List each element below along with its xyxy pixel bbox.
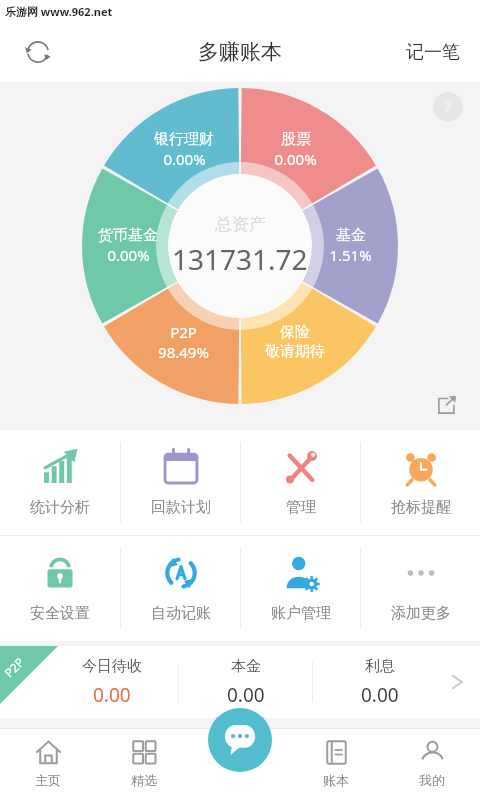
button[interactable]: 管理 [241, 430, 360, 535]
staticText: 0.00% [163, 149, 206, 169]
staticText: 利息 [365, 657, 395, 676]
staticText: 98.49% [158, 342, 209, 362]
staticText: ? [444, 96, 452, 118]
staticText: P2P [170, 322, 197, 342]
staticText: 0.00 [361, 682, 399, 708]
staticText: 今日待收 [82, 657, 142, 676]
staticText: 131731.72 [172, 240, 308, 278]
staticText: 安全设置 [30, 604, 90, 623]
staticText: 股票 [281, 130, 311, 149]
button[interactable]: 自动记账 [121, 536, 240, 641]
button[interactable]: 记一笔 [400, 33, 466, 72]
staticText: P2P [1, 654, 27, 680]
staticText: 敬请期待 [265, 342, 325, 361]
staticText: 保险 [280, 323, 310, 342]
staticText: 0.00 [93, 682, 131, 708]
button[interactable]: Chat [208, 708, 272, 772]
button[interactable]: Share [430, 388, 464, 422]
staticText: 管理 [286, 498, 316, 517]
staticText: 我的 [419, 772, 445, 788]
button[interactable]: Help [433, 92, 463, 122]
staticText: 银行理财 [154, 130, 214, 149]
staticText: 账户管理 [271, 604, 331, 623]
staticText: 乐游网 www.962.net [5, 4, 113, 19]
staticText: 多赚账本 [198, 39, 282, 65]
button[interactable]: 回款计划 [121, 430, 240, 535]
staticText: 回款计划 [151, 498, 211, 517]
button[interactable]: 主页 [0, 728, 96, 800]
staticText: 记一笔 [406, 41, 460, 64]
staticText: 账本 [323, 772, 349, 788]
staticText: 1.51% [329, 245, 372, 265]
staticText: 0.00 [227, 682, 265, 708]
button[interactable]: 安全设置 [0, 536, 120, 641]
button[interactable]: 添加更多 [361, 536, 480, 641]
button[interactable]: 统计分析 [0, 430, 120, 535]
button[interactable]: P2P [0, 646, 480, 718]
button[interactable]: 精选 [96, 728, 192, 800]
staticText: 0.00% [107, 245, 150, 265]
staticText: 精选 [131, 772, 157, 788]
button[interactable]: 抢标提醒 [361, 430, 480, 535]
staticText: 基金 [336, 226, 366, 245]
staticText: 主页 [35, 772, 61, 788]
button[interactable]: 账本 [288, 728, 384, 800]
button[interactable]: 账户管理 [241, 536, 360, 641]
staticText: 自动记账 [151, 604, 211, 623]
staticText: 货币基金 [98, 226, 158, 245]
button[interactable]: 我的 [384, 728, 480, 800]
staticText: 0.00% [274, 149, 317, 169]
staticText: 本金 [231, 657, 261, 676]
staticText: 添加更多 [391, 604, 451, 623]
staticText: 总资产 [215, 214, 266, 235]
staticText: 抢标提醒 [391, 498, 451, 517]
staticText: 统计分析 [30, 498, 90, 517]
button[interactable]: Refresh [18, 32, 58, 72]
